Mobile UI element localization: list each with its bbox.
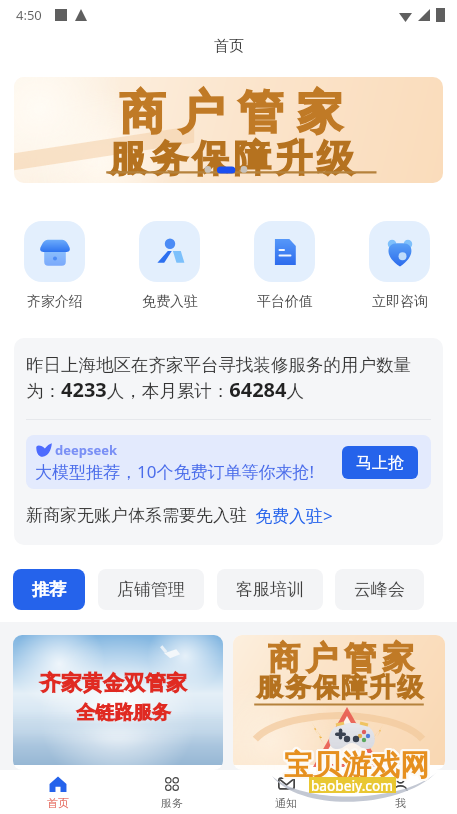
staticText: 4:50 (16, 6, 42, 24)
button[interactable]: 云峰会 (335, 569, 424, 610)
staticText: 宝贝游戏网 (285, 747, 430, 784)
staticText: 齐家介绍 (27, 293, 83, 311)
staticText: 我 (395, 796, 406, 810)
staticText: 宝贝游戏网 (285, 746, 430, 783)
staticText: 宝贝游戏网 (283, 745, 428, 782)
staticText: 推荐 (32, 579, 66, 600)
staticText: 宝贝游戏网 (285, 748, 430, 785)
staticText: 宝贝游戏网 (284, 749, 429, 786)
staticText: 新商家无账户体系需要先入驻 (26, 505, 247, 526)
staticText: 服务保障升级 (107, 135, 356, 182)
staticText: 宝贝游戏网 (283, 749, 428, 786)
staticText: 商户管家 (113, 84, 349, 142)
button[interactable]: 通知 (229, 770, 343, 814)
staticText: 立即咨询 (372, 293, 428, 311)
button[interactable]: 免费入驻> (255, 504, 333, 527)
staticText: 通知 (275, 796, 297, 810)
staticText: 大模型推荐，10个免费订单等你来抢! (35, 460, 315, 483)
staticText: 免费入驻 (142, 293, 198, 311)
staticText: 宝贝游戏网 (284, 746, 429, 783)
button[interactable]: 客服培训 (217, 569, 323, 610)
staticText: 云峰会 (354, 579, 405, 600)
staticText: 店铺管理 (117, 579, 185, 600)
staticText: 首页 (47, 796, 69, 810)
staticText: 商户管家 (265, 638, 417, 678)
staticText: 宝贝游戏网 (284, 748, 429, 785)
button[interactable]: 服务 (115, 770, 229, 814)
staticText: 全链路服务 (76, 701, 171, 725)
staticText: 宝贝游戏网 (286, 747, 431, 784)
staticText: 宝贝游戏网 (285, 749, 430, 786)
staticText: deepseek (55, 441, 118, 459)
button[interactable]: 齐家介绍 (24, 221, 85, 311)
staticText: 首页 (214, 37, 244, 56)
button[interactable]: 齐家黄金双管家 (13, 635, 223, 770)
staticText: 宝贝游戏网 (284, 747, 429, 784)
staticText: 服务保障升级 (256, 671, 424, 704)
staticText: 宝贝游戏网 (283, 748, 428, 785)
staticText: 宝贝游戏网 (286, 746, 431, 783)
button[interactable]: 商户管家 (14, 77, 443, 183)
button[interactable]: 首页 (0, 770, 115, 814)
button[interactable]: 平台价值 (254, 221, 315, 311)
staticText: 宝贝游戏网 (282, 746, 427, 783)
button[interactable]: 免费入驻 (139, 221, 200, 311)
staticText: 宝贝游戏网 (283, 746, 428, 783)
staticText: 马上抢 (356, 453, 404, 473)
button[interactable]: 我 (343, 770, 457, 814)
staticText: 昨日上海地区在齐家平台寻找装修服务的用户数量为：4233人，本月累计：64284… (26, 354, 431, 403)
staticText: 宝贝游戏网 (286, 748, 431, 785)
staticText: 客服培训 (236, 579, 304, 600)
staticText: 宝贝游戏网 (283, 747, 428, 784)
staticText: 平台价值 (257, 293, 313, 311)
staticText: 宝贝游戏网 (284, 745, 429, 782)
button[interactable]: 推荐 (13, 569, 85, 610)
staticText: baobeiy.com (311, 777, 394, 793)
staticText: 宝贝游戏网 (282, 748, 427, 785)
staticText: 服务 (161, 796, 183, 810)
staticText: 齐家黄金双管家 (40, 670, 187, 696)
button[interactable]: 店铺管理 (98, 569, 204, 610)
staticText: 宝贝游戏网 (282, 747, 427, 784)
button[interactable]: 马上抢 (342, 446, 418, 479)
staticText: 宝贝游戏网 (284, 747, 429, 784)
button[interactable]: 立即咨询 (369, 221, 430, 311)
staticText: 宝贝游戏网 (285, 745, 430, 782)
button[interactable]: 商户管家 (233, 635, 445, 770)
